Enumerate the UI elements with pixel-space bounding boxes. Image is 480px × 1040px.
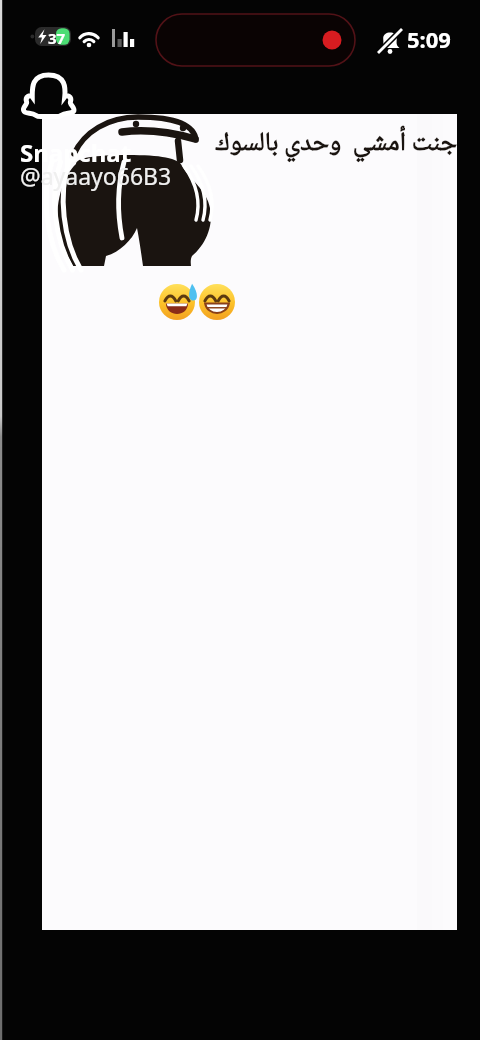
- staticText: @ayaayo66B3: [20, 160, 172, 191]
- staticText: جنت أمشي وحدي بالسوك: [147, 122, 457, 166]
- staticText: 37: [48, 28, 66, 48]
- staticText: 5:09: [407, 24, 451, 54]
- button[interactable]: Snapchat: [20, 136, 172, 200]
- button[interactable]: جنت أمشي وحدي بالسوك: [42, 114, 457, 930]
- button[interactable]: Snapchat: [20, 72, 77, 126]
- staticText: Snapchat: [20, 136, 132, 169]
